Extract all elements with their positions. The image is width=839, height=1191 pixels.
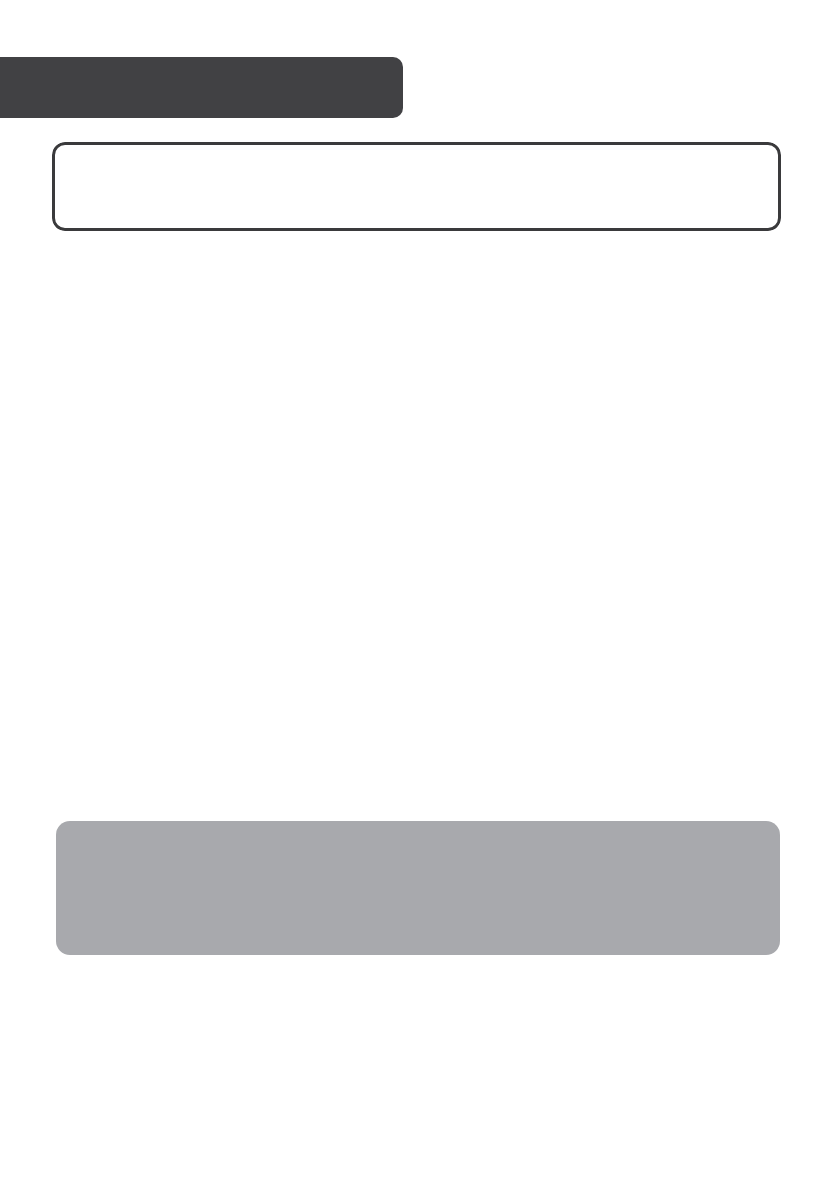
button[interactable]: Text field xyxy=(52,142,781,231)
button[interactable]: Primary action xyxy=(56,821,780,955)
button[interactable]: Top app bar xyxy=(0,57,403,118)
